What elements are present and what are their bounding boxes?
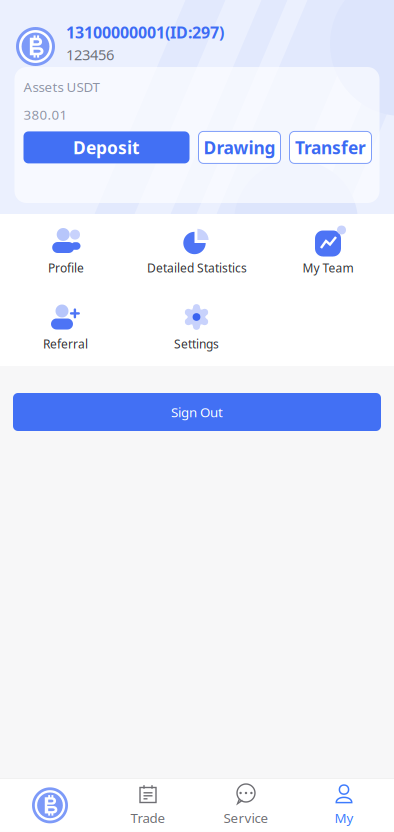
staticText: Assets USDT: [23, 78, 99, 96]
staticText: Deposit: [73, 136, 140, 159]
staticText: 123456: [66, 45, 114, 64]
staticText: 380.01: [23, 106, 67, 123]
button[interactable]: Trade: [99, 779, 197, 832]
button[interactable]: Deposit: [23, 131, 189, 163]
button[interactable]: Service: [197, 779, 295, 832]
button[interactable]: Referral: [0, 290, 131, 366]
button[interactable]: Home: [1, 779, 99, 832]
button[interactable]: My Team: [262, 214, 393, 290]
button[interactable]: Detailed Statistics: [131, 214, 262, 290]
staticText: 13100000001(ID:297): [66, 22, 224, 43]
staticText: Transfer: [295, 136, 366, 159]
staticText: Service: [223, 809, 268, 827]
button[interactable]: My: [295, 779, 393, 832]
button[interactable]: Settings: [131, 290, 262, 366]
button[interactable]: Profile: [0, 214, 131, 290]
staticText: Trade: [130, 809, 165, 827]
staticText: Detailed Statistics: [147, 260, 247, 276]
staticText: Drawing: [203, 136, 275, 159]
staticText: Sign Out: [171, 403, 223, 421]
staticText: My: [334, 809, 353, 827]
button[interactable]: Transfer: [289, 131, 371, 163]
button[interactable]: Sign Out: [13, 393, 381, 431]
staticText: Settings: [174, 336, 219, 352]
staticText: My Team: [302, 260, 353, 276]
staticText: Referral: [43, 336, 88, 352]
staticText: Profile: [48, 260, 84, 276]
button[interactable]: Drawing: [198, 131, 280, 163]
